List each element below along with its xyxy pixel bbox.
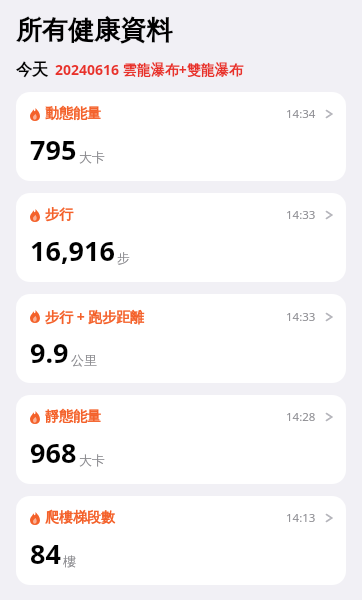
staticText: 大卡 — [79, 149, 105, 165]
other: Open details — [325, 107, 333, 121]
staticText: 968 — [30, 434, 77, 471]
staticText: 步行 + 跑步距離 — [45, 307, 145, 326]
other: Open details — [325, 410, 333, 424]
staticText: 爬樓梯段數 — [45, 509, 115, 527]
button[interactable]: 步行 — [16, 193, 346, 282]
staticText: 動態能量 — [45, 105, 101, 123]
staticText: 步行 — [45, 206, 73, 224]
staticText: 14:33 — [286, 207, 316, 223]
other: Open details — [325, 511, 333, 525]
staticText: 14:34 — [286, 106, 316, 122]
staticText: 所有健康資料 — [16, 14, 172, 47]
staticText: 16,916 — [30, 232, 115, 269]
staticText: 靜態能量 — [45, 408, 101, 426]
staticText: 樓 — [63, 553, 76, 569]
staticText: 14:13 — [286, 510, 316, 526]
button[interactable]: 靜態能量 — [16, 395, 346, 484]
staticText: 795 — [30, 131, 77, 168]
other: Open details — [325, 208, 333, 222]
staticText: 9.9 — [30, 334, 69, 371]
button[interactable]: 步行 + 跑步距離 — [16, 294, 346, 383]
staticText: 84 — [30, 535, 61, 572]
staticText: 20240616 雲龍瀑布+雙龍瀑布 — [55, 60, 243, 79]
staticText: 步 — [117, 250, 130, 266]
staticText: 公里 — [71, 352, 97, 368]
button[interactable]: 動態能量 — [16, 92, 346, 181]
staticText: 14:33 — [286, 309, 316, 325]
other: Open details — [325, 310, 333, 324]
staticText: 大卡 — [79, 452, 105, 468]
staticText: 今天 — [16, 60, 48, 80]
button[interactable]: 爬樓梯段數 — [16, 496, 346, 585]
staticText: 14:28 — [286, 409, 316, 425]
